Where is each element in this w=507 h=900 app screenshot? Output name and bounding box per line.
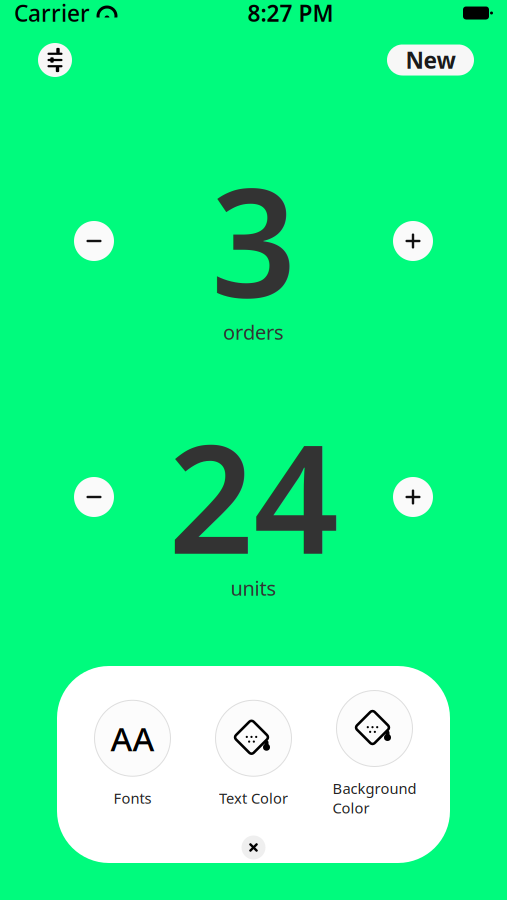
button[interactable]: Decrease <box>70 473 118 521</box>
button[interactable]: New <box>387 44 474 75</box>
button[interactable]: AA <box>72 700 193 808</box>
staticText: 3 <box>211 141 296 339</box>
staticText: Fonts <box>113 788 151 808</box>
button[interactable]: Settings <box>33 38 77 82</box>
staticText: Text Color <box>219 788 288 808</box>
staticText: orders <box>223 319 284 345</box>
staticText: 8:27 PM <box>247 0 333 28</box>
staticText: Carrier <box>14 0 90 28</box>
button[interactable]: Close <box>233 827 273 867</box>
button[interactable]: Decrease <box>70 217 118 265</box>
staticText: units <box>230 575 276 601</box>
staticText: New <box>405 45 455 75</box>
button[interactable]: Background Color <box>314 690 435 817</box>
button[interactable]: Increase <box>389 473 437 521</box>
staticText: Background Color <box>332 778 416 817</box>
button[interactable]: Text Color <box>193 700 314 808</box>
staticText: AA <box>110 716 154 760</box>
button[interactable]: Increase <box>389 217 437 265</box>
staticText: 24 <box>168 397 338 595</box>
